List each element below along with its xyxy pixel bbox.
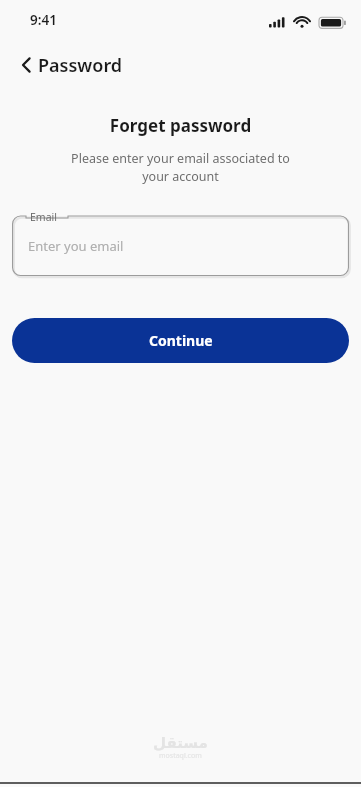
button[interactable]: Continue: [12, 318, 349, 363]
staticText: Password: [38, 53, 123, 78]
button[interactable]: Back: [8, 46, 46, 84]
staticText: mostaql.com: [159, 751, 202, 761]
staticText: Forget password: [0, 114, 361, 137]
staticText: Please enter your email associated to yo…: [34, 150, 327, 185]
staticText: Continue: [149, 331, 213, 350]
staticText: Email: [30, 210, 57, 224]
button[interactable]: Email: [12, 210, 349, 276]
staticText: مستقل: [153, 734, 208, 751]
staticText: Enter you email: [28, 237, 124, 255]
staticText: 9:41: [30, 11, 57, 29]
